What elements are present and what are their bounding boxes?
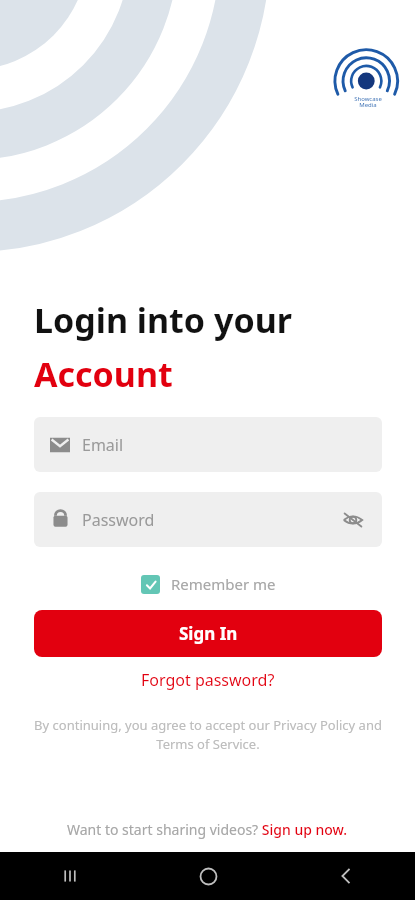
staticText: Forgot password? (141, 669, 275, 691)
button[interactable]: Password (34, 492, 382, 547)
staticText: Password (82, 509, 340, 531)
staticText: Showcase (354, 95, 382, 103)
other: Showcase Media logo (339, 52, 397, 110)
staticText: Account (34, 351, 173, 397)
staticText: Remember me (171, 574, 276, 594)
button[interactable]: Home (139, 852, 277, 900)
staticText: Email (82, 434, 124, 456)
staticText: Sign In (179, 622, 238, 645)
staticText: Media (359, 101, 377, 109)
button[interactable]: Forgot password? (135, 666, 281, 694)
button[interactable]: Back (277, 852, 415, 900)
staticText: By continuing, you agree to accept our P… (34, 716, 382, 753)
button[interactable]: Sign In (34, 610, 382, 657)
button[interactable]: Want to start sharing videos? Sign up no… (59, 816, 356, 843)
staticText: Want to start sharing videos? Sign up no… (67, 820, 348, 839)
button[interactable]: Recent apps (0, 852, 139, 900)
button[interactable]: Show password (340, 507, 366, 533)
button[interactable]: Remember me (141, 574, 276, 594)
button[interactable]: Email (34, 417, 382, 472)
staticText: Login into your (34, 297, 292, 343)
